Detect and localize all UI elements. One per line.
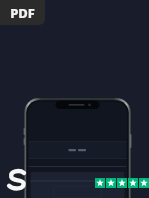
button[interactable]: Trustpilot rating 5 stars	[95, 178, 149, 188]
button[interactable]: Brand logo	[6, 169, 28, 191]
button[interactable]: PDF	[0, 0, 45, 25]
staticText: PDF	[10, 4, 35, 22]
